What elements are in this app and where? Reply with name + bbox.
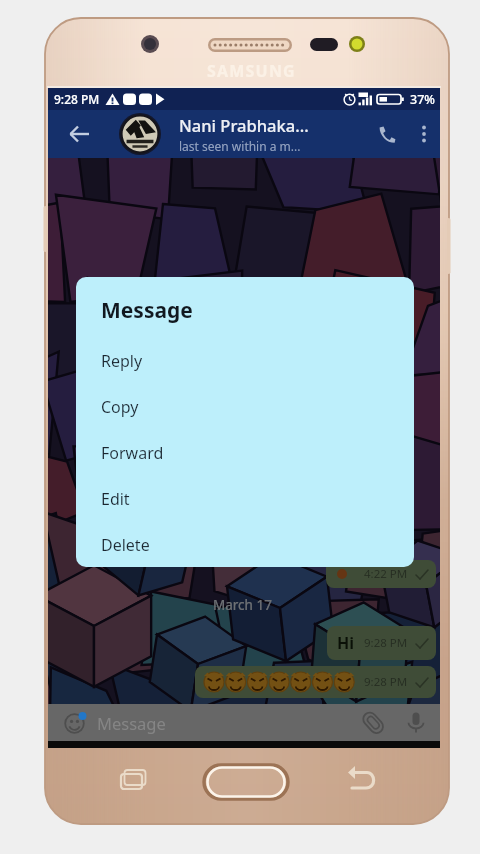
- button[interactable]: Nani Prabhaka...: [108, 110, 366, 158]
- staticText: 9:28 PM: [364, 635, 408, 651]
- button[interactable]: Voice message: [399, 706, 433, 740]
- staticText: Nani Prabhaka...: [179, 114, 309, 136]
- button[interactable]: Attach: [354, 704, 392, 741]
- button[interactable]: Reply: [76, 338, 414, 384]
- staticText: 9:28 PM: [54, 91, 100, 107]
- button[interactable]: Emoji: [58, 707, 90, 739]
- staticText: Reply: [101, 350, 143, 372]
- button[interactable]: Call: [366, 110, 408, 158]
- staticText: Message: [97, 712, 166, 734]
- staticText: Message: [101, 296, 193, 325]
- staticText: Hi: [337, 632, 355, 654]
- button[interactable]: Back: [48, 110, 108, 158]
- staticText: March 17: [213, 596, 272, 614]
- staticText: 9:28 PM: [364, 674, 408, 690]
- button[interactable]: Hi: [327, 626, 436, 660]
- button[interactable]: 4:22 PM: [326, 560, 436, 588]
- staticText: Delete: [101, 534, 150, 556]
- button[interactable]: Delete: [76, 522, 414, 567]
- button[interactable]: Edit: [76, 476, 414, 522]
- button[interactable]: More options: [408, 110, 440, 158]
- button[interactable]: Copy: [76, 384, 414, 430]
- button[interactable]: 9:28 PM: [195, 666, 436, 698]
- staticText: Edit: [101, 488, 130, 510]
- staticText: SAMSUNG: [207, 60, 296, 78]
- staticText: 37%: [410, 91, 435, 108]
- staticText: 4:22 PM: [364, 566, 408, 582]
- staticText: Forward: [101, 442, 164, 464]
- staticText: Copy: [101, 396, 139, 418]
- button[interactable]: Forward: [76, 430, 414, 476]
- staticText: last seen within a m...: [179, 138, 301, 154]
